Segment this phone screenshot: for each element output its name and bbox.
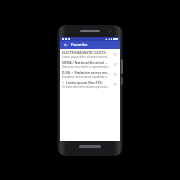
staticText: IUVA • Radiation access memory	[62, 70, 110, 74]
staticText: Lorem ipsum dolor sit amet consectetur a…	[62, 55, 110, 59]
staticText: Favorite	[71, 42, 88, 48]
button[interactable]: More options	[112, 81, 118, 87]
button[interactable]: More options	[112, 71, 118, 77]
button[interactable]: Navigate up	[63, 42, 69, 48]
staticText: ELECTROMAGNETIC GLITCH	[62, 50, 107, 54]
button[interactable]: NEMA / National Electrical Manufacturers…	[60, 59, 120, 69]
staticText: Ut enim ad minim veniam quis nostrud exe…	[62, 85, 110, 89]
button[interactable]: IUVA • Radiation access memory	[60, 69, 120, 79]
staticText: Excepteur sint occaecat cupidatat non pr…	[62, 75, 110, 79]
button[interactable]: More options	[112, 61, 118, 67]
staticText: Duis aute irure dolor in reprehenderit i…	[62, 65, 110, 69]
staticText: ⚡ Lorem ipsum (Var. ETS)	[62, 80, 103, 84]
button[interactable]: ELECTROMAGNETIC GLITCH	[60, 49, 120, 59]
button[interactable]: More options	[112, 51, 118, 57]
button[interactable]: ⚡ Lorem ipsum (Var. ETS)	[60, 79, 120, 89]
staticText: NEMA / National Electrical Manufacturers…	[62, 60, 110, 64]
